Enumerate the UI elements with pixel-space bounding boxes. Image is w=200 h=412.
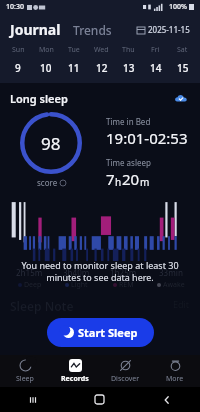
staticText: m (140, 175, 150, 189)
staticText: Records (61, 374, 89, 384)
staticText: 10 (40, 61, 52, 75)
staticText: You need to monitor sleep at least 30 mi… (8, 259, 192, 283)
button[interactable]: 2025-11-15 (135, 22, 192, 37)
button[interactable]: Tue (60, 43, 88, 77)
staticText: Long sleep (10, 91, 68, 106)
staticText: 14 (150, 61, 162, 75)
staticText: 13 (123, 61, 135, 75)
button[interactable]: Thu (115, 43, 142, 77)
button[interactable]: 3h40m (53, 267, 100, 290)
button[interactable]: Recents (0, 387, 66, 412)
staticText: 3h40m (63, 267, 90, 278)
staticText: Sat (177, 45, 188, 55)
staticText: 19:01-02:53 (106, 128, 188, 148)
staticText: score (37, 177, 58, 188)
button[interactable]: Discover (100, 355, 150, 387)
button[interactable]: Trends (73, 22, 112, 38)
staticText: 20 (122, 169, 140, 189)
staticText: h (115, 175, 122, 189)
staticText: 98 (41, 132, 61, 155)
button[interactable]: Records (50, 355, 100, 387)
staticText: Thu (122, 45, 135, 55)
staticText: Trends (73, 22, 112, 38)
button[interactable]: 1h25m (100, 267, 147, 290)
staticText: 2025-11-15 (148, 24, 190, 35)
button[interactable]: Wed (88, 43, 115, 77)
button[interactable]: More (150, 355, 200, 387)
staticText: 9 (15, 61, 21, 75)
button[interactable]: Start Sleep (47, 318, 154, 347)
staticText: Light (71, 280, 88, 290)
button[interactable]: Sat (169, 43, 196, 77)
staticText: Deep (24, 280, 42, 290)
button[interactable]: Back (133, 387, 200, 412)
staticText: Journal (10, 20, 61, 39)
button[interactable]: Sleep (0, 355, 50, 387)
staticText: Time asleep (106, 157, 151, 168)
button[interactable]: Synced to cloud (174, 92, 188, 106)
staticText: 100% (169, 2, 187, 12)
staticText: Tue (68, 45, 80, 55)
staticText: 2h15m (16, 267, 43, 278)
staticText: Awake (163, 280, 185, 290)
button[interactable]: score (37, 177, 66, 188)
staticText: Sun (12, 45, 25, 55)
staticText: 15 (177, 61, 189, 75)
staticText: 10:30 (6, 2, 24, 12)
button[interactable]: 2h15m (6, 267, 53, 290)
button[interactable]: Mon (32, 43, 60, 77)
staticText: 33min (159, 267, 183, 278)
staticText: More (166, 374, 184, 384)
staticText: Time in Bed (106, 116, 151, 127)
staticText: Discover (111, 374, 140, 384)
staticText: REM (119, 280, 134, 290)
button[interactable]: Home (66, 387, 133, 412)
staticText: 7 (106, 169, 115, 189)
staticText: Fri (151, 45, 160, 55)
button[interactable]: Journal (10, 20, 61, 39)
staticText: 11 (68, 61, 80, 75)
staticText: Wed (94, 45, 109, 55)
button[interactable]: 33min (147, 267, 194, 290)
button[interactable]: Fri (142, 43, 169, 77)
staticText: Start Sleep (78, 325, 138, 340)
button[interactable]: Sun (4, 43, 32, 77)
staticText: 1h25m (110, 267, 137, 278)
staticText: Sleep (16, 374, 34, 384)
staticText: 12 (96, 61, 108, 75)
staticText: Mon (39, 45, 54, 55)
staticText: Sleep Note (10, 298, 74, 314)
